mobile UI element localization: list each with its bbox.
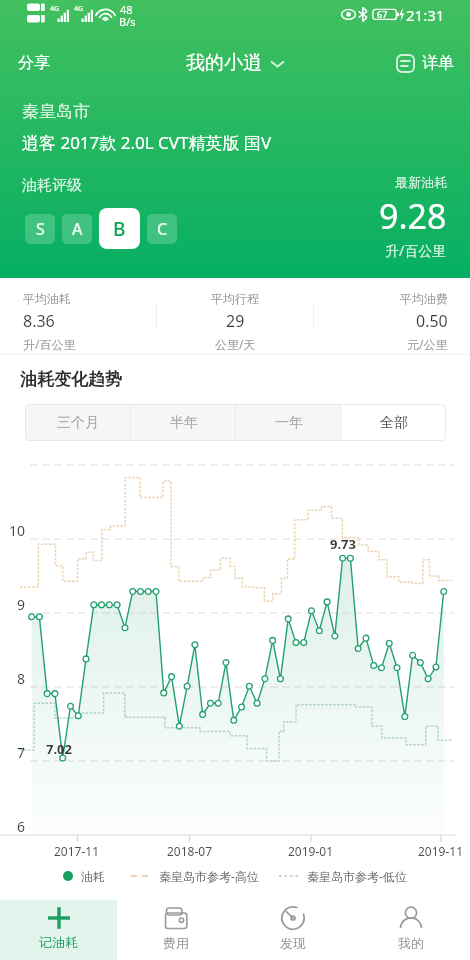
staticText: 秦皇岛市参考-高位 xyxy=(159,868,259,884)
staticText: 21:31 xyxy=(406,5,445,25)
staticText: 7.02 xyxy=(46,740,72,758)
button[interactable]: 费用 xyxy=(117,900,234,960)
staticText: 67 xyxy=(377,8,388,20)
staticText: 4G xyxy=(74,4,84,14)
staticText: B xyxy=(113,216,126,242)
staticText: 8 xyxy=(17,669,26,688)
staticText: 平均油耗 xyxy=(23,291,71,306)
staticText: 48 xyxy=(120,2,133,17)
staticText: 9 xyxy=(17,595,26,614)
staticText: S xyxy=(36,218,45,240)
staticText: 我的 xyxy=(398,935,424,951)
staticText: 分享 xyxy=(18,53,50,73)
staticText: 油耗评级 xyxy=(22,176,82,195)
staticText: 发现 xyxy=(280,935,306,951)
staticText: 费用 xyxy=(163,935,189,951)
staticText: 记油耗 xyxy=(39,934,78,950)
staticText: 0.50 xyxy=(416,310,448,332)
staticText: 10 xyxy=(9,521,26,540)
staticText: 我的小逍 xyxy=(186,51,262,75)
staticText: 升/百公里 xyxy=(385,241,447,260)
staticText: 公里/天 xyxy=(215,336,256,352)
staticText: B/s xyxy=(119,14,136,29)
staticText: 4G xyxy=(50,4,60,14)
button[interactable]: 半年 xyxy=(131,404,236,441)
staticText: 2017-11 xyxy=(54,843,100,859)
staticText: 油耗变化趋势 xyxy=(20,369,122,390)
button[interactable]: 一年 xyxy=(236,404,341,441)
button[interactable]: B xyxy=(99,208,140,249)
staticText: 平均行程 xyxy=(211,291,259,306)
staticText: 逍客 2017款 2.0L CVT精英版 国V xyxy=(22,131,272,154)
staticText: 秦皇岛市参考-低位 xyxy=(307,868,407,884)
staticText: 平均油费 xyxy=(400,291,448,306)
staticText: A xyxy=(72,218,83,240)
staticText: 一年 xyxy=(275,414,303,432)
staticText: 全部 xyxy=(380,414,408,432)
staticText: 2019-01 xyxy=(288,843,334,859)
button[interactable]: 平均油耗 xyxy=(0,278,156,354)
button[interactable]: 分享 xyxy=(0,43,68,83)
staticText: C xyxy=(157,218,168,240)
button[interactable]: A xyxy=(62,214,92,244)
staticText: 9.28 xyxy=(379,193,447,239)
button[interactable]: 三个月 xyxy=(25,404,131,441)
button[interactable]: 详单 xyxy=(386,45,470,81)
staticText: 9.73 xyxy=(330,535,356,553)
button[interactable]: C xyxy=(147,214,177,244)
button[interactable]: 我的 xyxy=(352,900,470,960)
staticText: 最新油耗 xyxy=(395,174,447,190)
staticText: 详单 xyxy=(422,53,454,73)
staticText: 半年 xyxy=(170,414,198,432)
staticText: 7 xyxy=(17,743,26,762)
staticText: 三个月 xyxy=(57,414,99,432)
staticText: 8.36 xyxy=(23,310,55,332)
button[interactable]: S xyxy=(25,214,55,244)
staticText: 6 xyxy=(17,817,26,836)
staticText: 元/公里 xyxy=(407,336,448,352)
button[interactable]: 发现 xyxy=(234,900,352,960)
button[interactable]: 平均行程 xyxy=(157,278,313,354)
staticText: 秦皇岛市 xyxy=(22,101,90,122)
button[interactable]: 我的小逍 xyxy=(178,45,293,81)
button[interactable]: 记油耗 xyxy=(0,900,117,960)
staticText: 升/百公里 xyxy=(23,336,76,352)
button[interactable]: 平均油费 xyxy=(314,278,470,354)
staticText: 2019-11 xyxy=(418,843,464,859)
staticText: 29 xyxy=(226,310,245,332)
staticText: 2018-07 xyxy=(167,843,213,859)
button[interactable]: 全部 xyxy=(341,404,446,441)
staticText: 油耗 xyxy=(81,869,105,884)
